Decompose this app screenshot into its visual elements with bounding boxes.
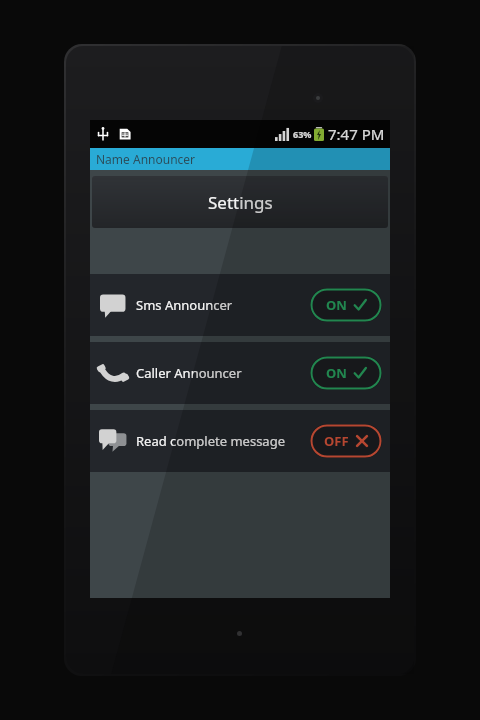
staticText: OFF [324,432,349,450]
staticText: Settings [208,191,273,214]
button[interactable]: Off toggle [310,424,382,458]
staticText: 7:47 PM [328,124,385,144]
staticText: Sms Announcer [136,296,233,314]
staticText: Name Announcer [96,151,196,167]
staticText: Caller Announcer [136,364,242,382]
button[interactable]: On toggle [310,356,382,390]
staticText: ON [326,296,347,314]
staticText: Read complete message [136,432,285,450]
button[interactable]: Caller Announcer [90,342,390,404]
staticText: ON [326,364,347,382]
button[interactable]: Settings [92,176,388,228]
button[interactable]: Sms Announcer [90,274,390,336]
button[interactable]: On toggle [310,288,382,322]
button[interactable]: Read complete message [90,410,390,472]
button[interactable]: Name Announcer [90,148,390,170]
staticText: 63% [293,128,312,140]
